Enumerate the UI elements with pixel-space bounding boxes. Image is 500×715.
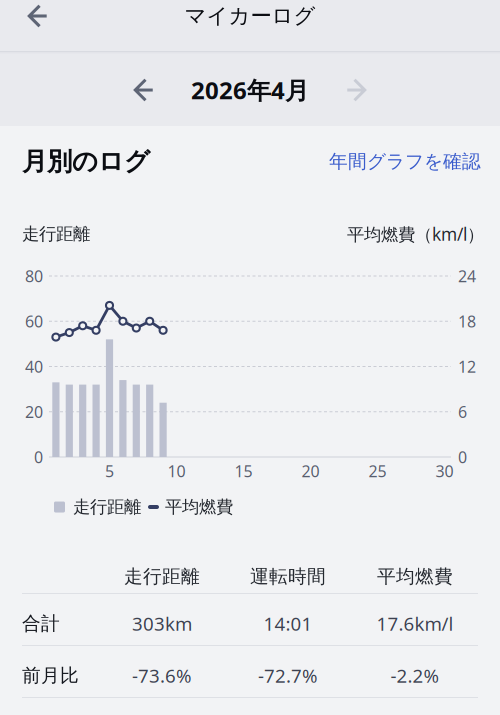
staticText: 平均燃費（km/l） bbox=[347, 222, 484, 245]
staticText: 20 bbox=[25, 401, 43, 422]
staticText: 前月比 bbox=[22, 664, 79, 687]
button[interactable]: Back bbox=[14, 0, 62, 32]
staticText: 10 bbox=[167, 460, 185, 482]
staticText: 17.6km/l bbox=[376, 611, 453, 636]
staticText: 合計 bbox=[22, 612, 60, 635]
staticText: マイカーログ bbox=[184, 3, 315, 29]
staticText: 24 bbox=[458, 265, 476, 287]
staticText: 走行距離 bbox=[124, 565, 200, 588]
staticText: 走行距離 bbox=[73, 496, 141, 518]
staticText: 15 bbox=[234, 460, 252, 482]
staticText: 平均燃費 bbox=[165, 496, 233, 518]
staticText: 運転時間 bbox=[250, 565, 326, 588]
staticText: 月別のログ bbox=[22, 146, 150, 177]
button[interactable]: Previous month bbox=[124, 71, 164, 109]
staticText: 20 bbox=[301, 460, 319, 482]
staticText: 5 bbox=[105, 460, 114, 482]
staticText: 年間グラフを確認 bbox=[329, 150, 481, 173]
staticText: 2026年4月 bbox=[191, 74, 309, 106]
button[interactable]: 年間グラフを確認 bbox=[329, 142, 500, 181]
staticText: 平均燃費 bbox=[377, 565, 453, 588]
staticText: -72.7% bbox=[258, 663, 318, 688]
staticText: 60 bbox=[25, 311, 43, 332]
button[interactable]: Next month bbox=[336, 71, 376, 109]
staticText: 40 bbox=[25, 356, 43, 377]
staticText: 303km bbox=[132, 611, 192, 636]
staticText: -2.2% bbox=[390, 663, 439, 688]
staticText: -73.6% bbox=[132, 663, 192, 688]
staticText: 0 bbox=[34, 446, 43, 468]
staticText: 6 bbox=[458, 401, 467, 422]
staticText: 走行距離 bbox=[22, 223, 90, 245]
staticText: 80 bbox=[25, 265, 43, 287]
staticText: 0 bbox=[458, 446, 467, 468]
staticText: 30 bbox=[435, 460, 453, 482]
staticText: 25 bbox=[368, 460, 386, 482]
staticText: 18 bbox=[458, 311, 476, 332]
staticText: 12 bbox=[458, 356, 476, 377]
staticText: 14:01 bbox=[263, 611, 312, 636]
